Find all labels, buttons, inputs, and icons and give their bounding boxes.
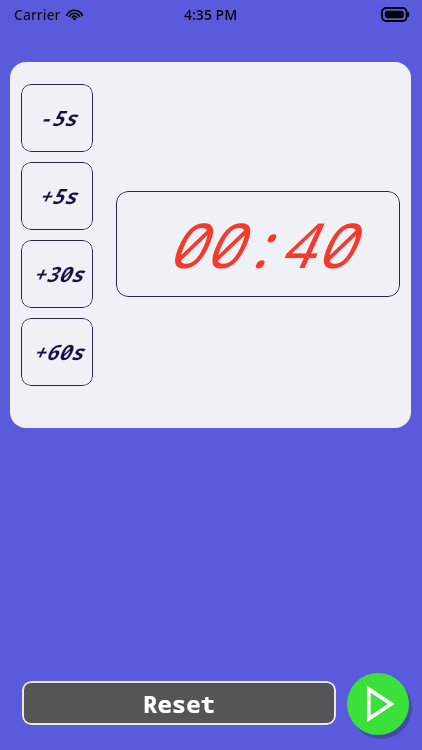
staticText: -5s [38,104,76,133]
button[interactable]: +30s [21,240,93,308]
staticText: +60s [32,338,83,367]
staticText: Carrier [14,5,61,24]
staticText: 00:40 [165,202,352,286]
staticText: +5s [38,182,76,211]
button[interactable]: Start timer [347,673,409,735]
staticText: +30s [32,260,83,289]
button[interactable]: +60s [21,318,93,386]
button[interactable]: Reset [22,681,336,725]
staticText: 4:35 PM [184,5,238,24]
button[interactable]: +5s [21,162,93,230]
staticText: Reset [143,687,215,720]
button[interactable]: -5s [21,84,93,152]
